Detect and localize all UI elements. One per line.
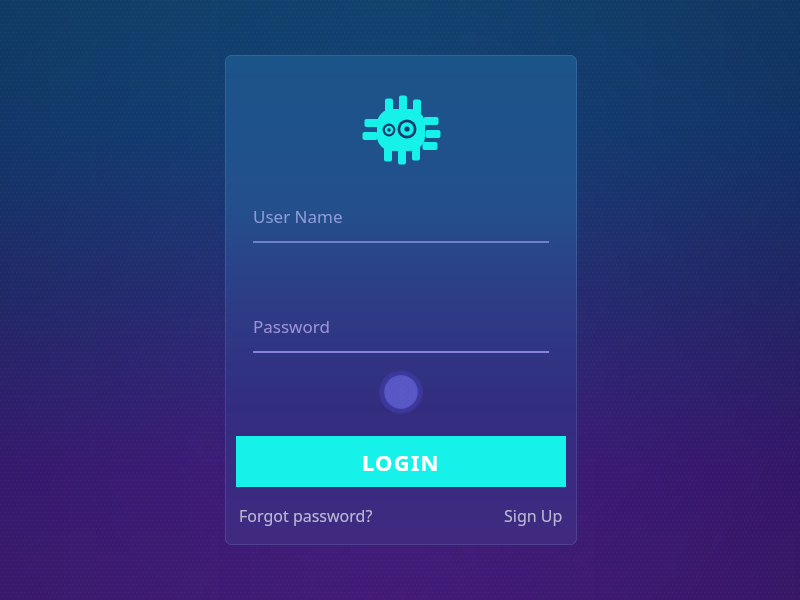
staticText: Forgot password? (239, 505, 373, 527)
button[interactable]: LOGIN (236, 436, 566, 487)
button[interactable]: Fingerprint login (379, 370, 423, 414)
button[interactable]: Sign Up (504, 505, 563, 527)
button[interactable]: Password (253, 315, 549, 353)
staticText: LOGIN (362, 447, 440, 477)
staticText: Sign Up (504, 505, 563, 527)
button[interactable]: Forgot password? (239, 505, 373, 527)
button[interactable]: User Name (253, 205, 549, 243)
staticText: User Name (253, 205, 343, 228)
staticText: Password (253, 315, 330, 338)
